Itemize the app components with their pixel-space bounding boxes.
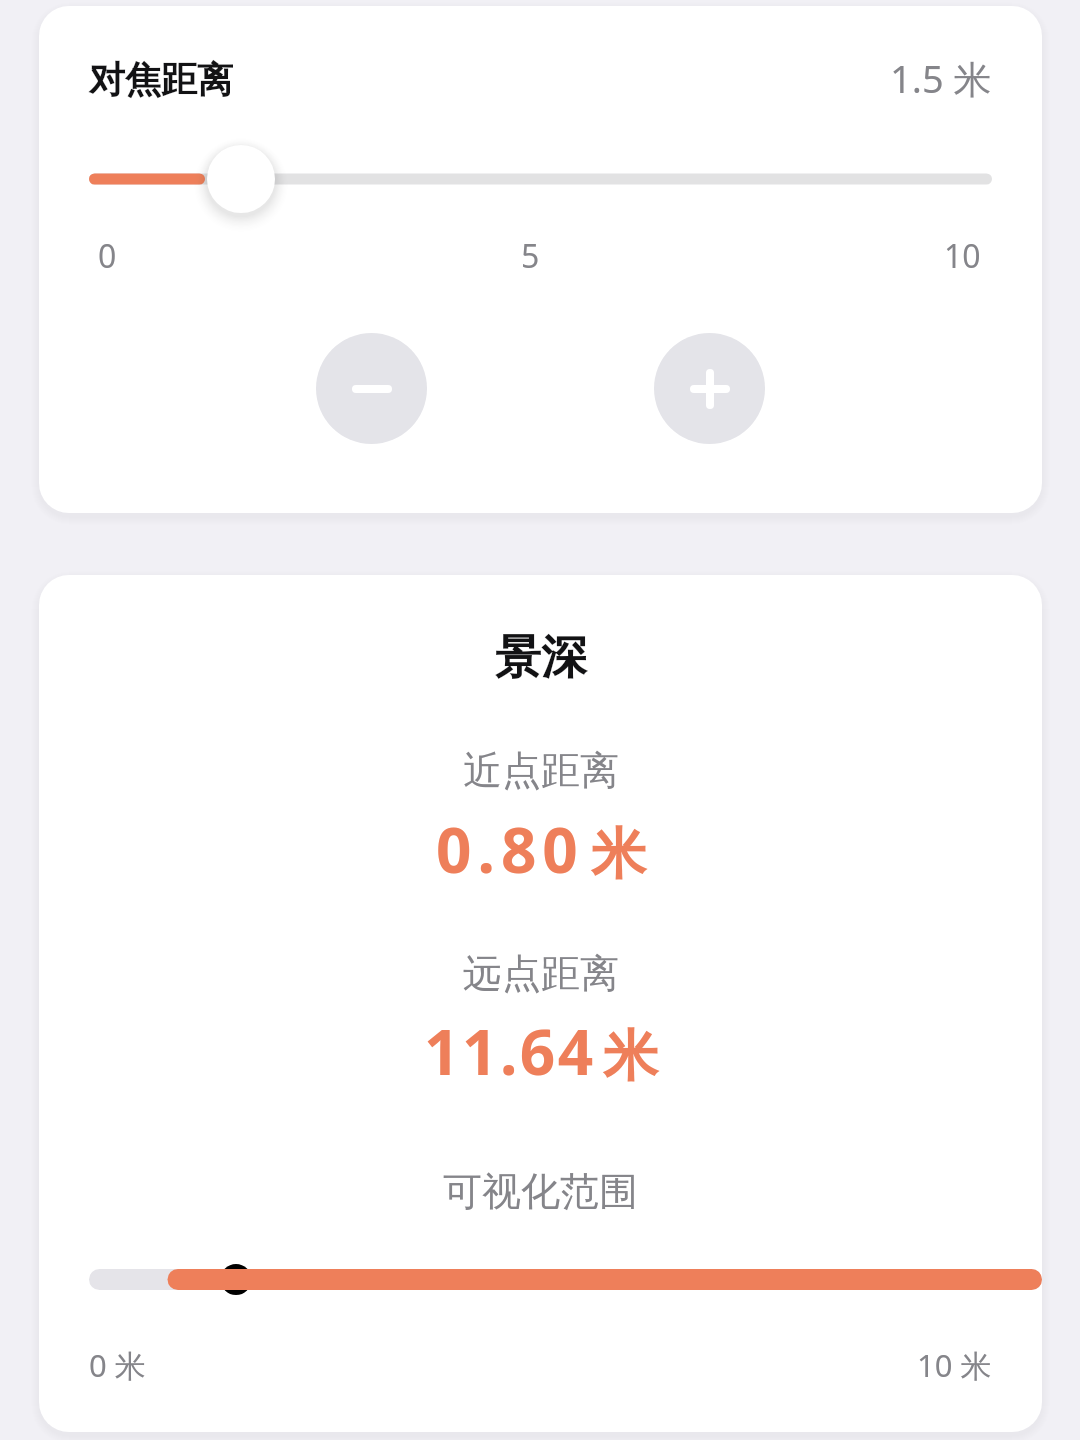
staticText: 可视化范围: [443, 1167, 638, 1216]
staticText: 远点距离: [463, 949, 619, 998]
staticText: 米: [591, 820, 646, 889]
button[interactable]: 景深可视化范围: [39, 1260, 1042, 1299]
staticText: 米: [603, 1022, 658, 1091]
staticText: 对焦距离: [89, 57, 233, 102]
staticText: 0: [98, 234, 117, 278]
staticText: 0.80: [436, 807, 584, 891]
staticText: 10: [944, 234, 981, 278]
staticText: 10 米: [917, 1344, 992, 1386]
button[interactable]: 减少: [316, 333, 427, 444]
staticText: 1.5 米: [890, 52, 992, 104]
staticText: 近点距离: [463, 746, 619, 795]
button[interactable]: 对焦距离滑块: [89, 145, 992, 213]
staticText: 11.64: [424, 1009, 596, 1093]
staticText: 0 米: [89, 1344, 146, 1386]
staticText: 景深: [495, 629, 587, 687]
button[interactable]: 增加: [654, 333, 765, 444]
staticText: 5: [521, 234, 540, 278]
